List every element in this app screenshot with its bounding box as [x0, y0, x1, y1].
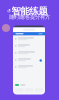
staticText: 随时随地·提分有方 [9, 13, 50, 20]
staticText: 智能练题 [11, 5, 47, 17]
